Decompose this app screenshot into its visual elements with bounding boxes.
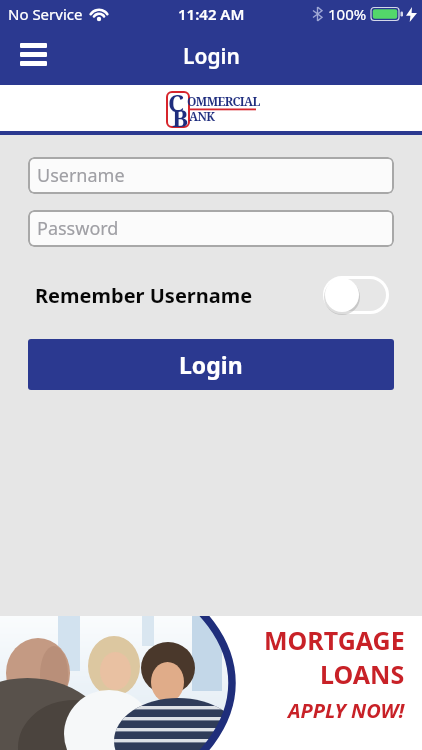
staticText: No Service [8,4,83,24]
button[interactable]: Login [28,339,394,390]
button[interactable] [323,276,389,314]
staticText: Remember Username [35,282,253,309]
button[interactable]: Username [28,157,394,194]
staticText: Username [37,163,125,188]
staticText: APPLY NOW! [288,697,405,724]
staticText: B [172,101,189,134]
button[interactable]: Password [28,210,394,247]
staticText: C [168,86,185,119]
staticText: LOANS [320,657,405,691]
button[interactable]: MORTGAGE [0,616,422,750]
staticText: OMMERCIAL [187,93,260,109]
button[interactable] [20,43,47,66]
staticText: ANK [189,108,215,124]
staticText: MORTGAGE [264,623,405,657]
staticText: Password [37,216,119,241]
staticText: 100% [328,4,367,24]
staticText: Login [183,42,240,71]
staticText: Login [179,349,243,380]
staticText: 11:42 AM [178,4,245,24]
